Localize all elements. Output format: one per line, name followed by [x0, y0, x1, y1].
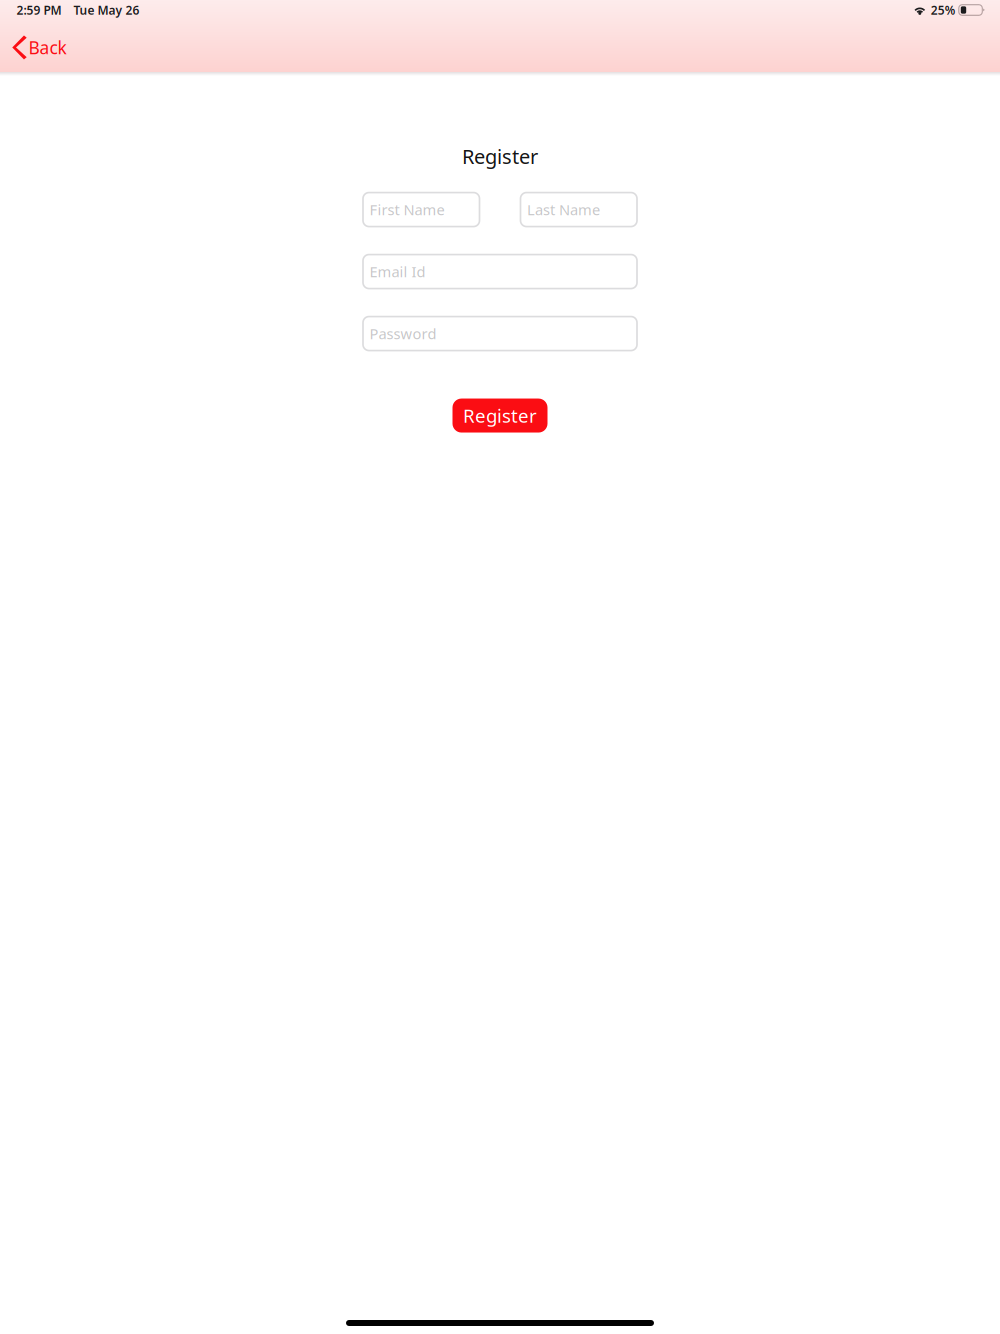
- staticText: Password: [369, 324, 436, 343]
- staticText: First Name: [369, 200, 444, 219]
- staticText: Register: [462, 143, 538, 170]
- staticText: Tue May 26: [73, 2, 139, 18]
- button[interactable]: Password: [363, 317, 637, 351]
- button[interactable]: Email Id: [363, 255, 637, 289]
- staticText: Email Id: [369, 262, 425, 281]
- staticText: Back: [28, 36, 66, 59]
- button[interactable]: Back: [0, 22, 76, 72]
- staticText: 2:59 PM: [16, 2, 61, 18]
- staticText: Last Name: [527, 200, 600, 219]
- button[interactable]: Last Name: [520, 193, 637, 227]
- staticText: Register: [463, 403, 537, 428]
- button[interactable]: First Name: [363, 193, 479, 227]
- staticText: 25%: [931, 2, 956, 18]
- button[interactable]: Register: [452, 399, 547, 433]
